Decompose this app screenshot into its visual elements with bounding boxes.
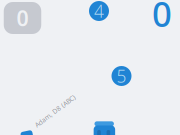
staticText: 0 — [152, 0, 172, 36]
button[interactable]: Open — [0, 0, 180, 135]
button[interactable]: 0 — [4, 2, 41, 34]
staticText: 5 — [116, 64, 126, 87]
staticText: 0 — [16, 4, 28, 32]
button[interactable]: 5 — [111, 66, 131, 86]
button[interactable]: Card — [21, 131, 33, 135]
button[interactable]: 4 — [89, 1, 109, 21]
staticText: 4 — [94, 0, 104, 22]
staticText: Adam, D8 (ABC) — [30, 107, 79, 115]
